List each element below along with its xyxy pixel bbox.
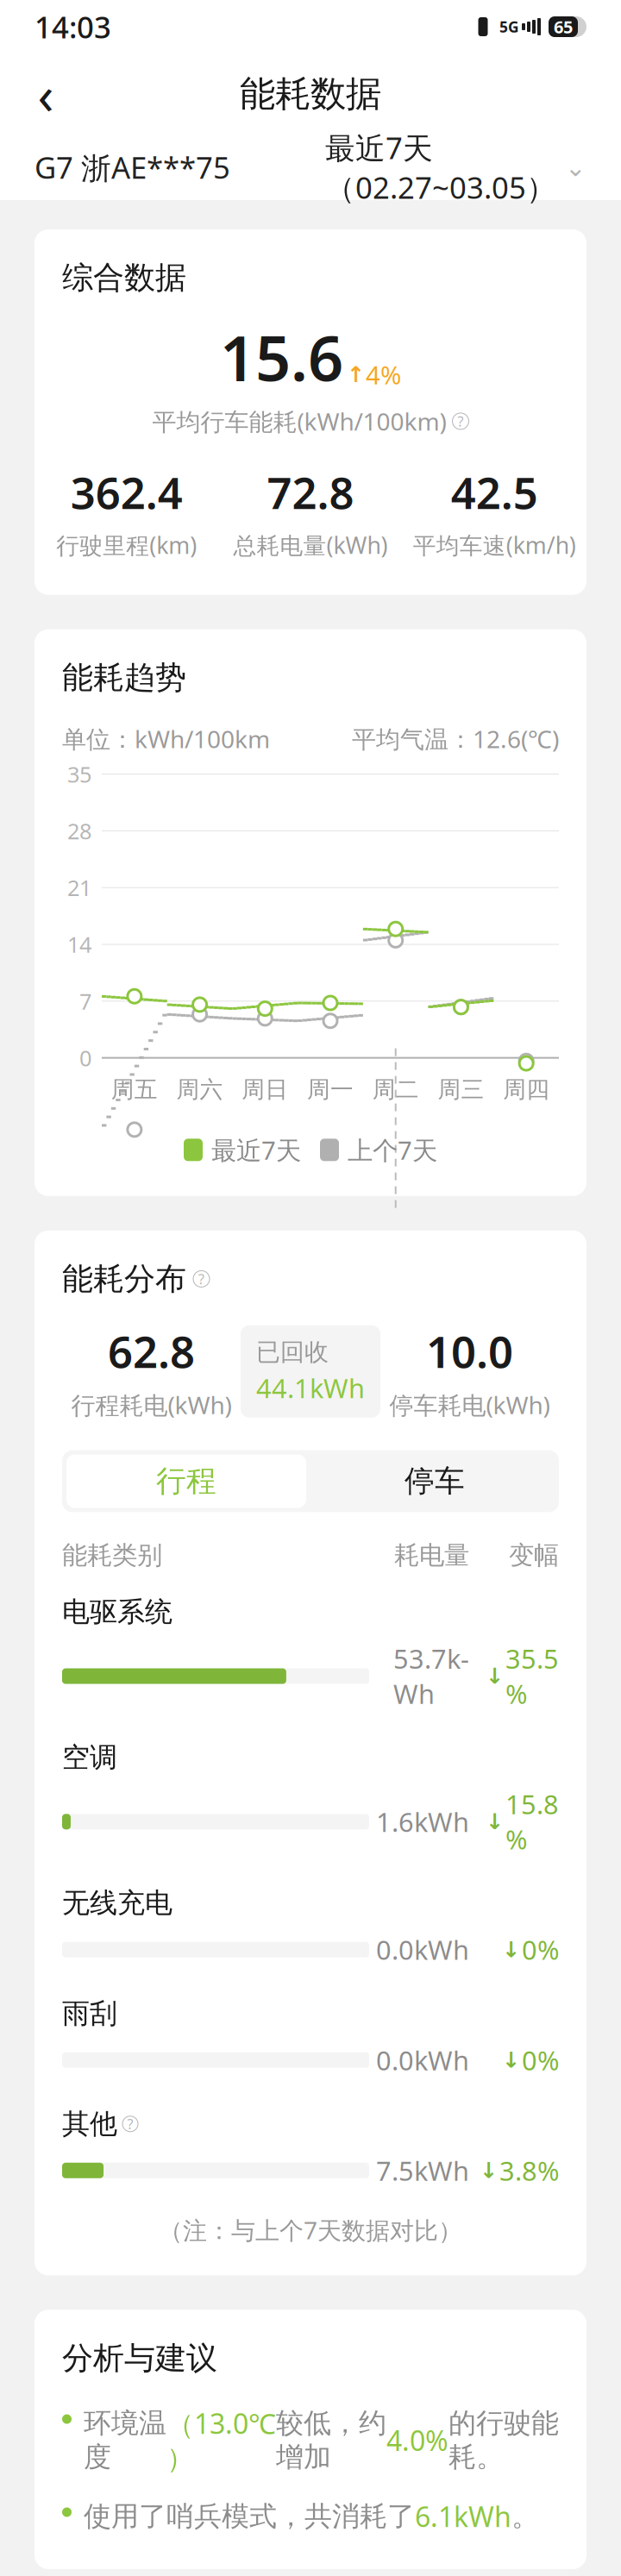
staticText: 能耗趋势 [62,659,186,697]
staticText: 无线充电 [62,1886,172,1920]
staticText: 35 [67,760,91,789]
staticText: 周日 [242,1076,288,1104]
staticText: 42.5 [451,463,538,521]
staticText: 停车 [405,1463,465,1500]
staticText: 平均车速(km/h) [413,530,576,560]
staticText: 4.0% [386,2422,448,2459]
staticText: 65 [554,15,573,38]
staticText: 最近7天 [211,1133,301,1167]
staticText: 4% [366,358,401,391]
button[interactable]: 最近7天（02.27~03.05） [325,128,586,207]
staticText: 已回收 [256,1337,329,1367]
staticText: 7 [79,987,91,1016]
staticText: 雨刮 [62,1997,117,2030]
staticText: 15.6 [220,316,343,398]
staticText: 14 [67,930,91,959]
staticText: 电驱系统 [62,1595,172,1629]
staticText: 。 [511,2499,539,2533]
staticText: ‹ [38,59,54,129]
staticText: 的行驶能耗。 [448,2406,559,2474]
staticText: ↓ [480,2158,498,2183]
staticText: （注：与上个7天数据对比） [159,2214,462,2246]
staticText: 21 [67,873,91,902]
staticText: ↓ [486,1664,504,1689]
staticText: 1.6kWh [376,1804,469,1839]
staticText: 空调 [62,1741,117,1774]
staticText: 10.0 [426,1322,513,1380]
staticText: 28 [67,816,91,845]
staticText: 周六 [176,1076,223,1104]
staticText: 周一 [307,1076,354,1104]
button[interactable]: 停车 [310,1454,559,1508]
staticText: 行程耗电(kWh) [71,1389,232,1421]
staticText: 7.5kWh [376,2153,469,2188]
staticText: ↓ [502,1937,520,1962]
staticText: 停车耗电(kWh) [389,1389,550,1421]
staticText: 62.8 [108,1322,195,1380]
staticText: 0.0kWh [376,1932,469,1967]
staticText: ? [127,2115,133,2133]
staticText: 能耗类别 [62,1540,162,1571]
staticText: 0% [522,2043,559,2078]
staticText: 总耗电量(kWh) [233,530,388,560]
staticText: 变幅 [509,1540,559,1571]
staticText: 0.0kWh [376,2043,469,2078]
staticText: ⌄ [565,153,586,182]
staticText: 环境温度 [84,2406,166,2474]
staticText: 15.8% [505,1787,559,1857]
staticText: G7 浙AE***75 [34,147,230,187]
staticText: 周四 [503,1076,549,1104]
staticText: 5G [499,17,519,37]
staticText: 耗电量 [394,1540,469,1571]
staticText: 6.1kWh [415,2498,511,2535]
staticText: 周三 [438,1076,484,1104]
staticText: （13.0℃） [166,2405,276,2476]
staticText: 平均行车能耗(kWh/100km) [152,405,446,437]
staticText: ↓ [486,1809,504,1834]
staticText: 周二 [372,1076,419,1104]
staticText: 0 [79,1043,91,1072]
staticText: 3.8% [499,2153,559,2188]
staticText: 44.1kWh [256,1370,365,1406]
staticText: 72.8 [267,463,354,521]
staticText: 能耗分布 [62,1260,186,1298]
staticText: 综合数据 [62,259,186,297]
staticText: 单位：kWh/100km [62,723,270,755]
staticText: 分析与建议 [62,2339,217,2377]
staticText: 53.7kWh [393,1641,469,1711]
staticText: 行驶里程(km) [56,530,197,560]
staticText: 行程 [156,1463,216,1500]
staticText: 14:03 [34,7,111,47]
staticText: 最近7天（02.27~03.05） [325,128,556,207]
button[interactable]: 行程 [62,1450,310,1512]
staticText: ? [458,412,464,430]
staticText: ↑ [347,362,365,387]
staticText: ? [198,1270,204,1288]
staticText: 其他 [62,2107,117,2141]
staticText: 35.5% [505,1641,559,1711]
staticText: 0% [522,1932,559,1967]
staticText: 平均气温：12.6(℃) [352,723,559,755]
staticText: 使用了哨兵模式，共消耗了 [84,2499,415,2533]
staticText: 能耗数据 [240,72,381,116]
staticText: 较低，约增加 [276,2406,386,2474]
button[interactable]: Back [22,71,69,117]
staticText: ↓ [502,2048,520,2073]
staticText: 周五 [111,1076,158,1104]
staticText: 362.4 [70,463,183,521]
staticText: 上个7天 [348,1133,437,1167]
